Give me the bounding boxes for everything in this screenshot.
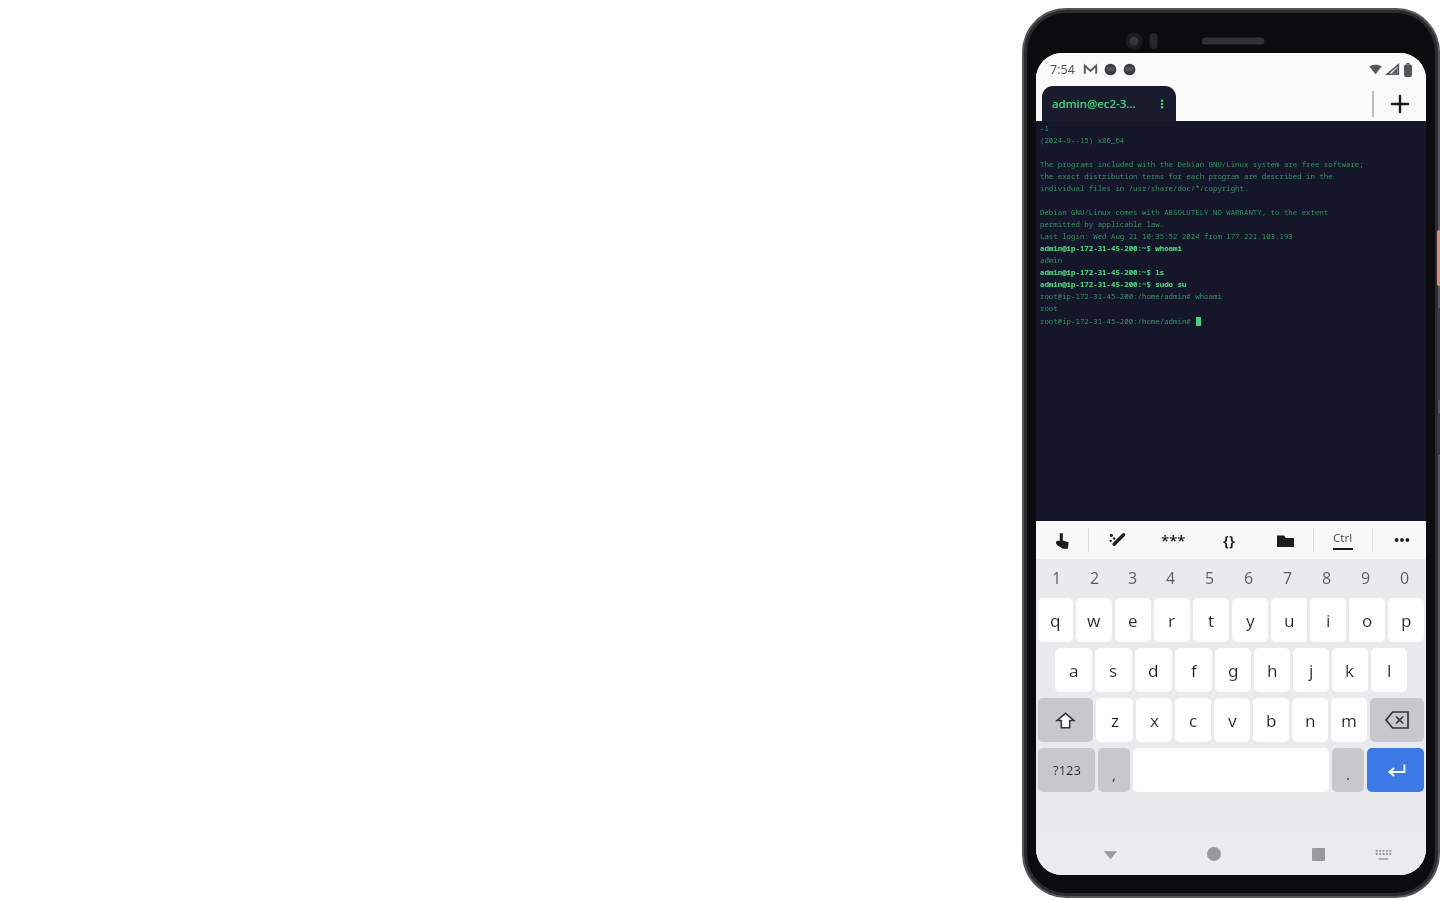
button[interactable]: Tab options	[1154, 96, 1170, 112]
staticText: admin@ip-172-31-45-200:~$ sudo su	[1040, 279, 1187, 289]
staticText: admin@ec2-3...	[1052, 96, 1136, 112]
button[interactable]: Back	[1088, 833, 1132, 875]
staticText: b	[1266, 709, 1277, 732]
staticText: 3	[1128, 567, 1138, 589]
button[interactable]: 0	[1385, 561, 1424, 595]
button[interactable]: d	[1135, 648, 1172, 692]
button[interactable]: m	[1331, 698, 1367, 742]
staticText: Debian GNU/Linux comes with ABSOLUTELY N…	[1040, 207, 1329, 217]
button[interactable]: h	[1254, 648, 1290, 692]
button[interactable]: 1	[1038, 561, 1076, 595]
staticText: g	[1228, 659, 1239, 682]
button[interactable]: q	[1038, 598, 1073, 642]
staticText: f	[1191, 659, 1197, 682]
button[interactable]: n	[1292, 698, 1328, 742]
staticText: ?123	[1053, 761, 1081, 779]
button[interactable]: 5	[1190, 561, 1229, 595]
button[interactable]: y	[1232, 598, 1268, 642]
button[interactable]: t	[1193, 598, 1229, 642]
button[interactable]: e	[1115, 598, 1151, 642]
button[interactable]: ,	[1098, 748, 1130, 792]
button[interactable]: ?123	[1038, 748, 1095, 792]
button[interactable]: 8	[1307, 561, 1346, 595]
staticText: permitted by applicable law.	[1040, 219, 1165, 229]
staticText: l	[1387, 659, 1392, 682]
button[interactable]: Switch keyboard	[1363, 834, 1403, 874]
staticText: q	[1050, 609, 1061, 632]
staticText: 4	[1166, 567, 1176, 589]
button[interactable]: Touch mode	[1036, 521, 1088, 559]
button[interactable]: r	[1154, 598, 1190, 642]
button[interactable]: Recent apps	[1296, 833, 1340, 875]
button[interactable]: 7	[1268, 561, 1307, 595]
button[interactable]: Auto complete	[1089, 521, 1145, 559]
staticText: j	[1309, 659, 1314, 682]
button[interactable]: 9	[1346, 561, 1385, 595]
button[interactable]: s	[1095, 648, 1132, 692]
button[interactable]: u	[1271, 598, 1307, 642]
staticText: Last login: Wed Aug 21 10:35:52 2024 fro…	[1040, 231, 1293, 241]
staticText: t	[1208, 609, 1215, 632]
button[interactable]: New tab	[1374, 86, 1426, 121]
staticText: (2024-9--15) x86_64	[1040, 135, 1125, 145]
button[interactable]: 3	[1114, 561, 1152, 595]
button[interactable]: o	[1349, 598, 1385, 642]
staticText: 7	[1283, 567, 1293, 589]
staticText: .	[1346, 764, 1351, 784]
staticText: i	[1326, 609, 1331, 632]
button[interactable]: k	[1332, 648, 1368, 692]
staticText: d	[1148, 659, 1159, 682]
button[interactable]: i	[1310, 598, 1346, 642]
button[interactable]: w	[1076, 598, 1112, 642]
button[interactable]: Files	[1257, 521, 1313, 559]
staticText: admin	[1040, 255, 1063, 265]
button[interactable]: 4	[1152, 561, 1190, 595]
button[interactable]: 6	[1229, 561, 1268, 595]
button[interactable]: -1	[1036, 121, 1426, 521]
button[interactable]: c	[1175, 698, 1211, 742]
button[interactable]: Backspace	[1370, 698, 1424, 742]
staticText: 8	[1322, 567, 1332, 589]
staticText: p	[1401, 609, 1412, 632]
staticText: y	[1246, 609, 1255, 632]
button[interactable]: Special keys	[1145, 521, 1201, 559]
button[interactable]: b	[1253, 698, 1289, 742]
staticText: u	[1284, 609, 1295, 632]
staticText: m	[1341, 709, 1357, 732]
button[interactable]: j	[1293, 648, 1329, 692]
button[interactable]: Ctrl	[1314, 521, 1372, 559]
staticText: a	[1069, 659, 1079, 682]
button[interactable]: x	[1136, 698, 1172, 742]
button[interactable]: admin@ec2-3...	[1042, 86, 1176, 121]
button[interactable]: l	[1371, 648, 1407, 692]
button[interactable]: z	[1096, 698, 1133, 742]
button[interactable]: .	[1332, 748, 1364, 792]
button[interactable]: f	[1175, 648, 1212, 692]
staticText: individual files in /usr/share/doc/*/cop…	[1040, 183, 1249, 193]
button[interactable]: 2	[1076, 561, 1114, 595]
staticText: admin@ip-172-31-45-200:~$ ls	[1040, 267, 1165, 277]
staticText: the exact distribution terms for each pr…	[1040, 171, 1333, 181]
staticText: -1	[1040, 123, 1049, 133]
button[interactable]: g	[1215, 648, 1251, 692]
staticText: root	[1040, 303, 1058, 313]
staticText: root@ip-172-31-45-200:/home/admin#	[1040, 316, 1196, 326]
button[interactable]: v	[1214, 698, 1250, 742]
staticText: z	[1111, 709, 1119, 732]
button[interactable]: Home	[1192, 833, 1236, 875]
staticText: 9	[1361, 567, 1371, 589]
button[interactable]: p	[1388, 598, 1424, 642]
staticText: admin@ip-172-31-45-200:~$ whoami	[1040, 243, 1182, 253]
staticText: w	[1087, 609, 1101, 632]
button[interactable]: Brackets	[1201, 521, 1257, 559]
staticText: n	[1305, 709, 1316, 732]
button[interactable]: a	[1055, 648, 1092, 692]
staticText: x	[1150, 709, 1159, 732]
staticText: ,	[1112, 764, 1117, 784]
staticText: c	[1189, 709, 1198, 732]
button[interactable]: Enter	[1367, 748, 1424, 792]
button[interactable]: More options	[1378, 521, 1426, 559]
button[interactable]: Shift	[1038, 698, 1093, 742]
staticText: r	[1168, 609, 1176, 632]
